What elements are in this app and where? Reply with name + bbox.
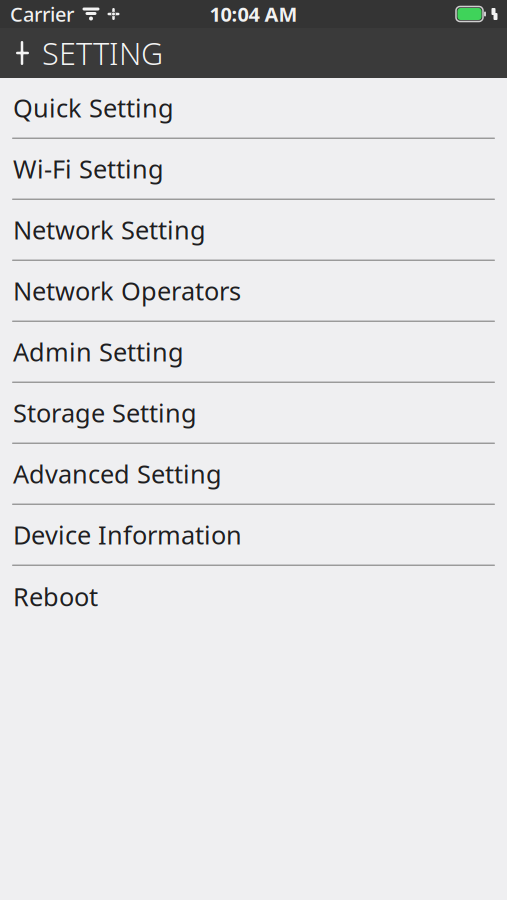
button[interactable]: Storage Setting [0,383,507,444]
staticText: 10:04 AM [209,1,297,27]
button[interactable]: Device Information [0,505,507,566]
staticText: Admin Setting [13,335,184,368]
staticText: Network Setting [13,213,206,246]
button[interactable]: Reboot [0,566,507,627]
staticText: Network Operators [13,274,241,307]
button[interactable]: Wi-Fi Setting [0,139,507,200]
staticText: Advanced Setting [13,457,222,490]
staticText: Wi-Fi Setting [13,152,164,185]
staticText: Device Information [13,518,242,551]
staticText: Reboot [13,580,98,613]
button[interactable]: Network Operators [0,261,507,322]
staticText: Carrier [10,1,74,27]
button[interactable]: Admin Setting [0,322,507,383]
staticText: SETTING [42,33,163,73]
button[interactable]: Network Setting [0,200,507,261]
staticText: Quick Setting [13,91,174,124]
staticText: Storage Setting [13,396,197,429]
button[interactable]: Advanced Setting [0,444,507,505]
button[interactable]: Quick Setting [0,78,507,139]
button[interactable]: Back to previous screen [0,28,177,78]
